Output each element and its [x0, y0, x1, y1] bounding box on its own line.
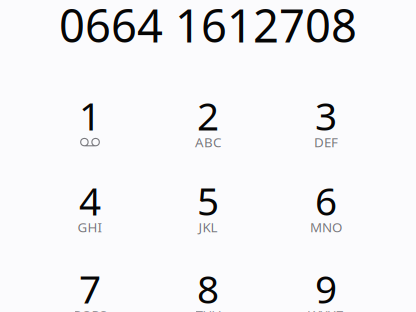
staticText: PQRS [73, 306, 106, 312]
staticText: JKL [198, 218, 217, 236]
staticText: 8 [197, 263, 219, 312]
staticText: MNO [310, 218, 342, 236]
button[interactable]: 8 TUV [149, 267, 267, 312]
staticText: GHI [77, 218, 102, 236]
button[interactable]: 3 DEF [267, 94, 385, 151]
button[interactable]: 6 MNO [267, 179, 385, 236]
staticText: TUV [195, 306, 220, 312]
staticText: 1 [79, 90, 101, 141]
button[interactable]: 4 GHI [31, 179, 149, 236]
staticText: 4 [79, 175, 101, 226]
staticText: 6 [315, 175, 337, 226]
button[interactable]: 7 PQRS [31, 267, 149, 312]
staticText: DEF [314, 133, 338, 151]
button[interactable]: 2 ABC [149, 94, 267, 151]
staticText: 3 [315, 90, 337, 141]
staticText: 2 [197, 90, 219, 141]
button[interactable]: 1 Voicemail [31, 94, 149, 151]
button[interactable]: 9 WXYZ [267, 267, 385, 312]
staticText: 0664 1612708 [59, 0, 357, 55]
staticText: 9 [315, 263, 337, 312]
staticText: 5 [197, 175, 219, 226]
staticText: WXYZ [308, 306, 344, 312]
staticText: ABC [195, 133, 221, 151]
button[interactable]: 5 JKL [149, 179, 267, 236]
staticText: 7 [79, 263, 101, 312]
